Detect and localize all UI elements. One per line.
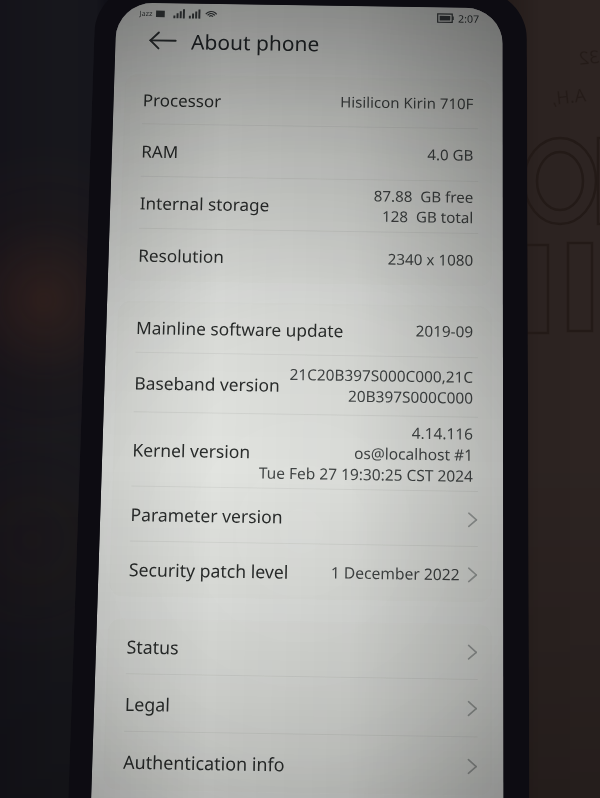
button[interactable]: Internal storage [120,176,492,234]
staticText: Jazz [139,8,153,18]
staticText: Processor [142,88,222,112]
staticText: 2:07 [458,11,479,25]
staticText: os@localhost #1 [353,443,473,466]
button[interactable]: Mainline software update [116,300,492,358]
staticText: Parameter version [130,502,283,529]
staticText: 4.14.116 [411,423,473,445]
staticText: About phone [191,28,320,57]
button[interactable]: Parameter version [110,486,492,547]
button[interactable]: Security patch level [109,541,492,602]
staticText: Legal [125,691,170,717]
staticText: Mainline software update [136,315,344,342]
button[interactable]: Resolution [119,228,492,287]
staticText: Kernel version [132,437,251,463]
staticText: 4.0 GB [427,145,473,165]
staticText: Authentication info [123,749,285,777]
staticText: 21C20B397S000C000,21C [289,364,473,388]
staticText: Internal storage [139,191,270,216]
button[interactable]: Legal [105,674,492,738]
staticText: Security patch level [129,557,289,584]
staticText: 128 GB total [382,206,473,228]
staticText: 2340 x 1080 [387,249,473,271]
button[interactable]: Status [106,618,492,680]
button[interactable]: Authentication info [103,732,492,796]
button[interactable]: Kernel version [112,412,492,492]
staticText: 1 December 2022 [331,562,460,585]
staticText: RAM [141,139,179,163]
staticText: Baseband version [134,371,280,397]
staticText: 2019-09 [415,321,473,342]
staticText: Status [126,634,179,659]
staticText: Tue Feb 27 19:30:25 CST 2024 [258,462,473,487]
staticText: 20B397S000C000 [347,386,473,409]
staticText: 87.88 GB free [373,186,473,208]
button[interactable]: Baseband version [115,352,492,418]
staticText: Hisilicon Kirin 710F [340,92,473,114]
button[interactable]: Back [146,24,180,57]
button[interactable]: RAM [122,124,492,182]
button[interactable]: Processor [124,74,492,130]
staticText: Resolution [138,243,224,268]
